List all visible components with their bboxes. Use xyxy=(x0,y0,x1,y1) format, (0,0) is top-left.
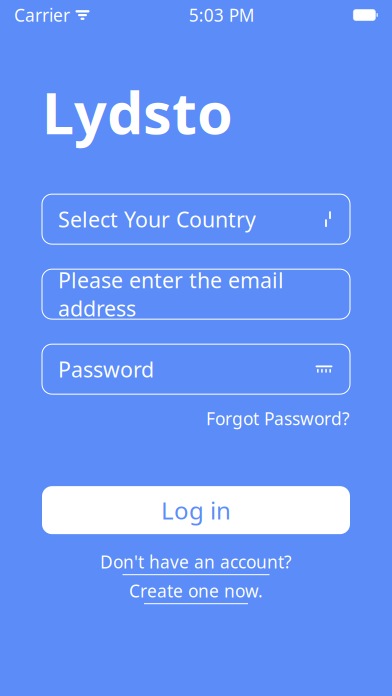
staticText: Password xyxy=(58,355,154,383)
button[interactable]: Forgot Password? xyxy=(206,407,350,430)
button[interactable]: Create one now. xyxy=(129,579,263,604)
button[interactable]: Password xyxy=(42,344,350,394)
button[interactable]: Log in xyxy=(42,486,350,534)
button[interactable]: Select Your Country xyxy=(42,194,350,244)
staticText: Carrier xyxy=(14,3,70,26)
staticText: Create one now. xyxy=(129,579,263,602)
staticText: Lydsto xyxy=(42,74,233,150)
button[interactable]: Please enter the email address xyxy=(42,269,350,319)
staticText: Forgot Password? xyxy=(206,407,350,430)
button[interactable]: Don't have an account? xyxy=(100,550,292,575)
staticText: Log in xyxy=(161,494,231,526)
staticText: Don't have an account? xyxy=(100,550,292,573)
staticText: 5:03 PM xyxy=(189,3,255,26)
staticText: Please enter the email address xyxy=(58,266,284,322)
staticText: Select Your Country xyxy=(58,205,256,233)
